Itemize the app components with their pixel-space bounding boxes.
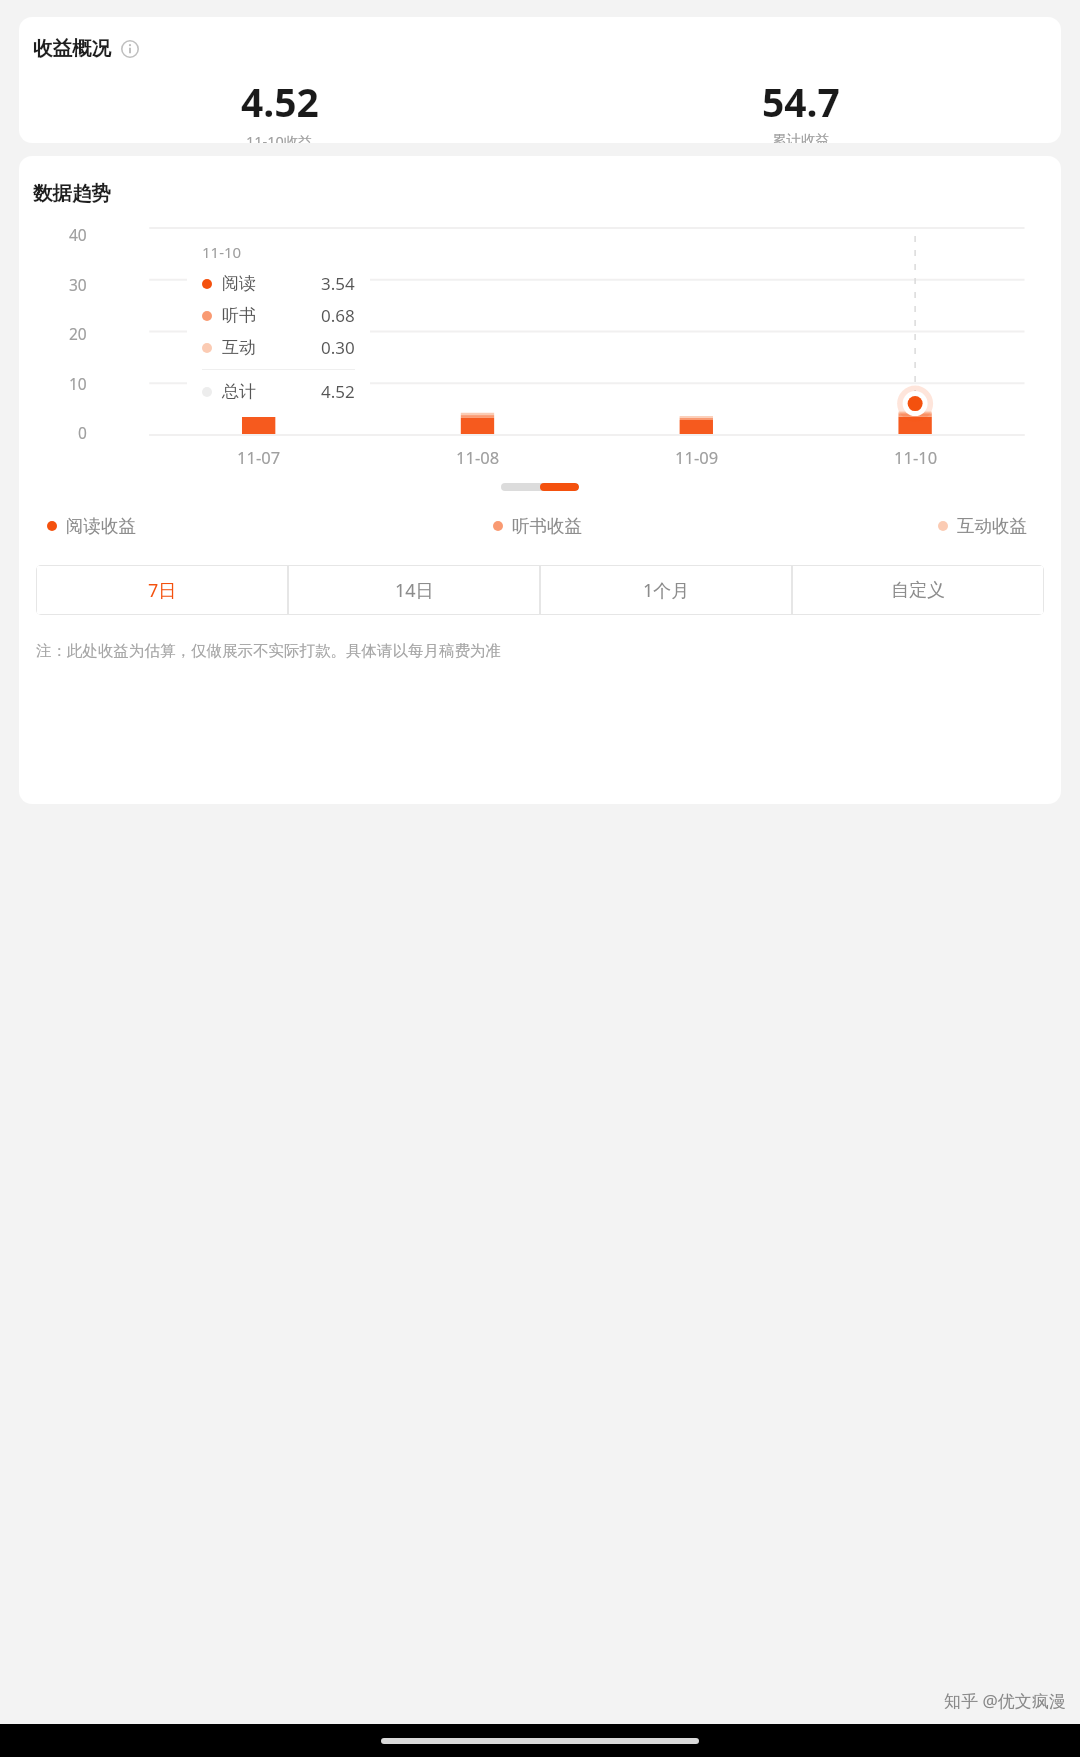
button[interactable]: 1个月 <box>541 566 791 614</box>
staticText: 0 <box>78 422 87 443</box>
staticText: 11-09 <box>675 446 719 468</box>
button[interactable]: 14日 <box>289 566 539 614</box>
staticText: 互动 <box>222 337 256 358</box>
staticText: 11-10 <box>202 242 242 262</box>
staticText: 知乎 @优文疯漫 <box>944 1689 1066 1712</box>
staticText: 阅读 <box>222 273 256 294</box>
staticText: 0.68 <box>321 304 355 327</box>
staticText: 听书收益 <box>512 515 582 537</box>
staticText: 30 <box>69 274 87 295</box>
staticText: 阅读收益 <box>66 515 136 537</box>
staticText: 4.52 <box>321 380 355 403</box>
staticText: 听书 <box>222 305 256 326</box>
button[interactable]: 7日 <box>37 566 287 614</box>
staticText: 总计 <box>222 381 256 402</box>
staticText: 互动收益 <box>957 515 1027 537</box>
staticText: 收益概况 <box>33 36 111 61</box>
staticText: 累计收益 <box>772 131 830 143</box>
staticText: 数据趋势 <box>33 181 111 206</box>
staticText: 自定义 <box>891 579 945 602</box>
button[interactable]: 收益说明 <box>121 40 139 58</box>
staticText: 54.7 <box>762 75 840 128</box>
staticText: 11-10 <box>894 446 938 468</box>
staticText: 3.54 <box>321 272 355 295</box>
staticText: 11-10收益 <box>246 131 313 143</box>
staticText: 40 <box>69 224 87 245</box>
staticText: 4.52 <box>241 75 319 128</box>
staticText: 11-08 <box>456 446 500 468</box>
button[interactable]: 收益概况 <box>33 36 139 61</box>
button[interactable]: 听书收益 <box>493 515 582 537</box>
staticText: 20 <box>69 323 87 344</box>
button[interactable]: 阅读收益 <box>47 515 136 537</box>
button[interactable]: 互动收益 <box>938 515 1027 537</box>
button[interactable]: 自定义 <box>793 566 1043 614</box>
staticText: 10 <box>69 373 87 394</box>
staticText: 11-07 <box>237 446 281 468</box>
staticText: 7日 <box>148 578 177 603</box>
staticText: 注：此处收益为估算，仅做展示不实际打款。具体请以每月稿费为准 <box>36 641 501 661</box>
staticText: 1个月 <box>643 578 690 603</box>
staticText: 14日 <box>395 578 434 603</box>
staticText: 0.30 <box>321 336 355 359</box>
